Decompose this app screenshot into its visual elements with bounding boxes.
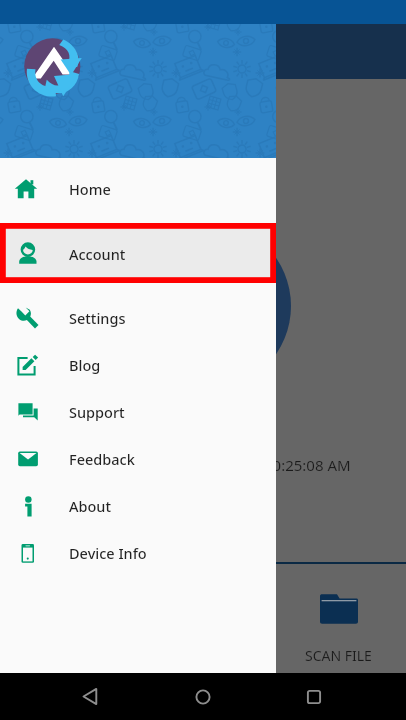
button[interactable]: Blog — [0, 341, 276, 388]
staticText: About — [69, 496, 111, 516]
button[interactable]: Device Info — [0, 529, 276, 576]
button[interactable]: SCAN FILE — [136, 564, 271, 674]
button[interactable]: SCAN FILE — [0, 564, 136, 674]
button[interactable]: Back — [70, 677, 110, 717]
staticText: 10:25:08 AM — [264, 455, 351, 475]
button[interactable]: Home — [0, 165, 276, 213]
staticText: Feedback — [69, 449, 135, 469]
staticText: Home — [69, 179, 111, 199]
staticText: Account — [69, 244, 126, 264]
button[interactable]: Home — [183, 677, 223, 717]
button[interactable]: SCAN FILE — [271, 564, 406, 674]
button[interactable]: Account — [0, 229, 276, 278]
staticText: Settings — [69, 308, 126, 328]
staticText: Blog — [69, 355, 101, 375]
button[interactable]: Recent apps — [294, 677, 334, 717]
staticText: Device Info — [69, 543, 147, 563]
staticText: SCAN FILE — [305, 646, 372, 665]
staticText: Support — [69, 402, 125, 422]
button[interactable]: Feedback — [0, 435, 276, 482]
button[interactable]: Settings — [0, 294, 276, 341]
button[interactable]: Support — [0, 388, 276, 435]
button[interactable]: About — [0, 482, 276, 529]
